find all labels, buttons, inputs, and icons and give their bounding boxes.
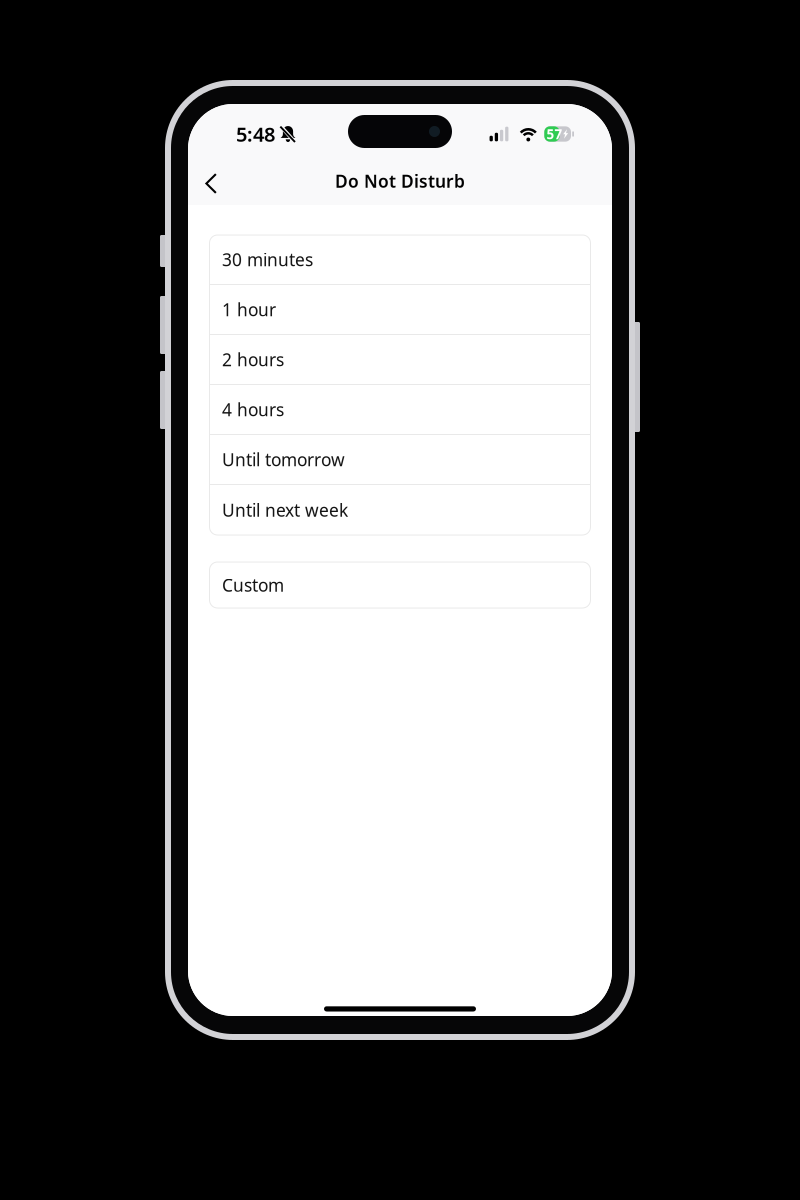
staticText: Do Not Disturb	[335, 169, 465, 192]
staticText: 2 hours	[222, 348, 284, 371]
button[interactable]: 1 hour	[209, 285, 590, 335]
staticText: 5:48	[236, 121, 275, 147]
button[interactable]: Until tomorrow	[209, 435, 590, 485]
button[interactable]: Until next week	[209, 485, 590, 535]
button[interactable]: 2 hours	[209, 335, 590, 385]
staticText: 4 hours	[222, 398, 284, 421]
button[interactable]: 30 minutes	[209, 235, 590, 285]
staticText: Until next week	[222, 498, 348, 521]
button[interactable]: 4 hours	[209, 385, 590, 435]
staticText: Custom	[222, 573, 284, 596]
staticText: 1 hour	[222, 298, 276, 321]
staticText: 57	[546, 125, 562, 143]
button[interactable]: Custom	[209, 562, 590, 608]
button[interactable]: Back	[190, 161, 230, 205]
staticText: Until tomorrow	[222, 448, 345, 471]
staticText: 30 minutes	[222, 248, 313, 271]
